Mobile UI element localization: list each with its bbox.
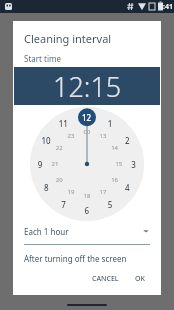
button[interactable]: 12:15	[14, 67, 160, 105]
staticText: OK	[135, 274, 145, 284]
button[interactable]: OK	[130, 271, 150, 287]
staticText: CANCEL	[92, 274, 119, 284]
staticText: Each 1 hour	[24, 226, 69, 237]
button[interactable]: Each 1 hour	[24, 223, 150, 239]
button[interactable]: CANCEL	[87, 271, 124, 287]
staticText: 6:41	[159, 2, 173, 12]
staticText: Start time	[24, 53, 61, 64]
staticText: After turning off the screen	[24, 253, 127, 264]
staticText: 12:15	[53, 68, 122, 105]
button[interactable]: Clock face hour picker	[30, 107, 144, 221]
staticText: Cleaning interval	[24, 31, 112, 46]
